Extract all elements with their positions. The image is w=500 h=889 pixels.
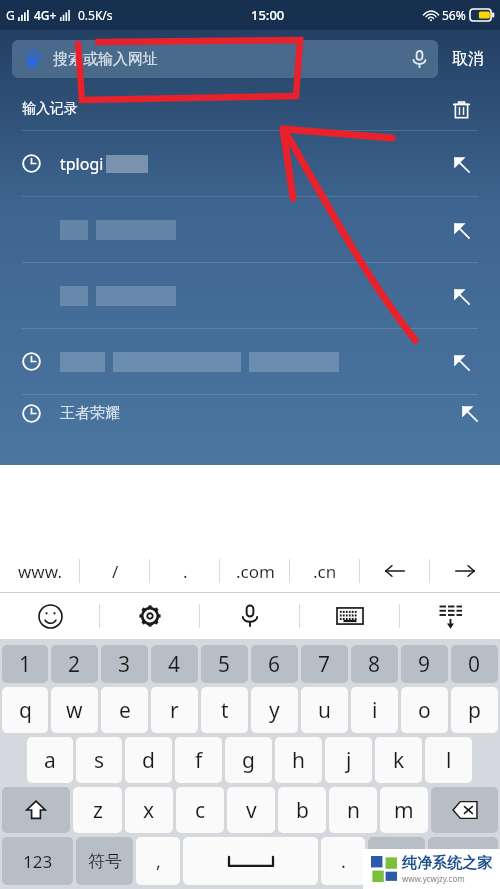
button[interactable]: s bbox=[76, 737, 122, 783]
button[interactable]: t bbox=[201, 687, 248, 733]
staticText: f bbox=[195, 746, 203, 775]
button[interactable]: f bbox=[175, 737, 222, 783]
button[interactable]: Emoji bbox=[0, 593, 100, 639]
button[interactable]: i bbox=[351, 687, 398, 733]
button[interactable]: q bbox=[2, 687, 48, 733]
staticText: www.ycwjzy.com bbox=[402, 873, 465, 884]
button[interactable]: .com bbox=[220, 550, 290, 592]
staticText: www. bbox=[18, 560, 62, 583]
button[interactable]: Chinese input bbox=[368, 837, 425, 885]
staticText: 123 bbox=[23, 850, 53, 873]
staticText: 9 bbox=[418, 650, 431, 679]
staticText: j bbox=[346, 746, 352, 775]
button[interactable]: 6 bbox=[251, 645, 298, 683]
button[interactable]: Fill search box bbox=[0, 263, 500, 328]
button[interactable]: Fill search box bbox=[444, 213, 478, 247]
staticText: 王者荣耀 bbox=[60, 404, 120, 423]
button[interactable]: . bbox=[321, 837, 365, 885]
staticText: 2 bbox=[68, 650, 81, 679]
staticText: 7 bbox=[318, 650, 331, 679]
button[interactable]: .cn bbox=[290, 550, 360, 592]
button[interactable]: u bbox=[301, 687, 348, 733]
button[interactable]: h bbox=[275, 737, 322, 783]
staticText: u bbox=[318, 696, 331, 725]
button[interactable]: n bbox=[329, 787, 377, 833]
button[interactable]: v bbox=[227, 787, 275, 833]
button[interactable]: 搜索或输入网址 bbox=[12, 40, 438, 78]
button[interactable]: Keyboard bbox=[300, 593, 400, 639]
staticText: 6 bbox=[268, 650, 281, 679]
staticText: 3 bbox=[118, 650, 131, 679]
button[interactable]: , bbox=[136, 837, 180, 885]
button[interactable]: c bbox=[176, 787, 224, 833]
button[interactable]: 2 bbox=[51, 645, 98, 683]
staticText: 8 bbox=[368, 650, 381, 679]
button[interactable]: m bbox=[380, 787, 428, 833]
button[interactable]: tplogi bbox=[0, 131, 500, 196]
button[interactable]: Left bbox=[360, 550, 430, 592]
button[interactable]: 9 bbox=[401, 645, 448, 683]
button[interactable]: www. bbox=[0, 550, 80, 592]
staticText: 15:00 bbox=[251, 6, 285, 24]
button[interactable]: Hide keyboard bbox=[400, 593, 500, 639]
button[interactable]: 123 bbox=[2, 837, 73, 885]
staticText: 1 bbox=[19, 650, 32, 679]
staticText: k bbox=[393, 746, 405, 775]
button[interactable]: j bbox=[325, 737, 372, 783]
button[interactable]: w bbox=[51, 687, 98, 733]
button[interactable]: Fill search box bbox=[444, 345, 478, 379]
staticText: m bbox=[394, 796, 414, 825]
staticText: i bbox=[372, 696, 378, 725]
button[interactable]: / bbox=[80, 550, 150, 592]
staticText: y bbox=[269, 696, 280, 725]
button[interactable]: 符号 bbox=[76, 837, 133, 885]
button[interactable]: Fill search box bbox=[444, 279, 478, 313]
button[interactable]: Space bbox=[183, 837, 318, 885]
staticText: c bbox=[195, 796, 206, 825]
staticText: e bbox=[119, 696, 131, 725]
button[interactable]: 8 bbox=[351, 645, 398, 683]
button[interactable]: Voice input bbox=[200, 593, 300, 639]
staticText: x bbox=[143, 796, 155, 825]
staticText: . bbox=[341, 849, 346, 874]
button[interactable]: 王者荣耀 bbox=[0, 399, 500, 427]
button[interactable]: 4 bbox=[151, 645, 198, 683]
button[interactable]: y bbox=[251, 687, 298, 733]
button[interactable]: a bbox=[27, 737, 73, 783]
staticText: h bbox=[292, 746, 305, 775]
button[interactable]: l bbox=[425, 737, 472, 783]
button[interactable]: x bbox=[125, 787, 173, 833]
button[interactable]: 1 bbox=[2, 645, 48, 683]
button[interactable]: Fill search box bbox=[444, 147, 478, 181]
button[interactable]: b bbox=[278, 787, 326, 833]
button[interactable]: k bbox=[375, 737, 422, 783]
button[interactable]: Shift bbox=[2, 787, 70, 833]
staticText: o bbox=[418, 696, 431, 725]
button[interactable]: 取消 bbox=[448, 43, 488, 75]
button[interactable]: d bbox=[125, 737, 172, 783]
button[interactable]: g bbox=[225, 737, 272, 783]
button[interactable]: z bbox=[73, 787, 122, 833]
button[interactable]: 7 bbox=[301, 645, 348, 683]
staticText: z bbox=[93, 796, 103, 825]
staticText: 搜索或输入网址 bbox=[53, 50, 158, 69]
staticText: 0 bbox=[468, 650, 481, 679]
button[interactable]: 换行 bbox=[428, 837, 498, 885]
button[interactable]: e bbox=[101, 687, 148, 733]
button[interactable]: Backspace bbox=[431, 787, 498, 833]
button[interactable]: Clear history bbox=[444, 92, 478, 126]
button[interactable]: Settings bbox=[100, 593, 200, 639]
button[interactable]: Fill search box bbox=[0, 329, 500, 394]
button[interactable]: o bbox=[401, 687, 448, 733]
button[interactable]: r bbox=[151, 687, 198, 733]
button[interactable]: . bbox=[150, 550, 220, 592]
staticText: .com bbox=[236, 560, 275, 583]
staticText: tplogi bbox=[60, 153, 104, 175]
button[interactable]: Right bbox=[430, 550, 500, 592]
button[interactable]: 3 bbox=[101, 645, 148, 683]
button[interactable]: Fill search box bbox=[0, 197, 500, 262]
button[interactable]: 5 bbox=[201, 645, 248, 683]
staticText: 输入记录 bbox=[22, 100, 78, 118]
button[interactable]: 0 bbox=[451, 645, 498, 683]
button[interactable]: p bbox=[451, 687, 498, 733]
